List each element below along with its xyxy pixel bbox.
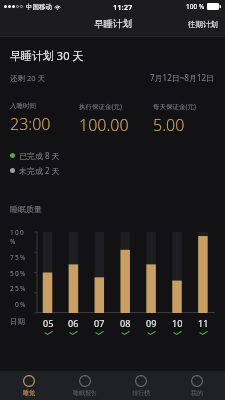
staticText: 50% xyxy=(10,269,27,278)
staticText: 睡觉 xyxy=(23,389,35,397)
staticText: 75% xyxy=(10,253,27,262)
staticText: 06 xyxy=(68,317,79,329)
staticText: 日期 xyxy=(10,317,25,326)
other: 排行榜 xyxy=(135,375,147,387)
staticText: 08 xyxy=(120,317,131,329)
other: 我的 xyxy=(191,375,203,387)
staticText: 早睡计划 30 天 xyxy=(10,48,84,63)
staticText: 0% xyxy=(15,300,27,309)
other: 睡觉 xyxy=(23,375,35,387)
staticText: 11:27 xyxy=(113,2,133,12)
staticText: 07 xyxy=(94,317,105,329)
staticText: 已完成 8 天 xyxy=(19,150,60,161)
staticText: 中国移动 xyxy=(26,3,52,11)
staticText: 早睡计划 xyxy=(94,18,132,30)
staticText: 100 % xyxy=(186,2,205,11)
button[interactable]: 往期计划 xyxy=(180,13,225,37)
staticText: 入睡时间 xyxy=(10,102,36,110)
staticText: 还剩 20 天 xyxy=(10,73,45,83)
staticText: 未完成 2 天 xyxy=(19,165,60,176)
staticText: 7月12日~8月12日 xyxy=(150,72,215,83)
staticText: 5.00 xyxy=(153,114,185,136)
staticText: 25% xyxy=(10,284,27,293)
staticText: 09 xyxy=(146,317,157,329)
staticText: 往期计划 xyxy=(188,20,218,29)
staticText: 睡眠质量 xyxy=(10,204,42,214)
staticText: 100% xyxy=(10,228,27,246)
staticText: 执行保证金(元) xyxy=(79,102,122,111)
staticText: 我的 xyxy=(191,389,203,397)
staticText: 睡眠报告 xyxy=(73,389,97,397)
staticText: 11 xyxy=(198,317,209,329)
button[interactable]: 排行榜 xyxy=(113,371,169,400)
staticText: 100.00 xyxy=(79,114,129,136)
button[interactable]: 睡觉 xyxy=(0,371,57,400)
staticText: 排行榜 xyxy=(132,389,150,397)
staticText: 23:00 xyxy=(10,113,51,135)
staticText: 每天保证金(元) xyxy=(153,102,196,111)
button[interactable]: 我的 xyxy=(169,371,225,400)
button[interactable]: 睡眠报告 xyxy=(57,371,113,400)
staticText: 10 xyxy=(172,317,183,329)
staticText: 05 xyxy=(43,317,54,329)
other: 睡眠报告 xyxy=(79,375,91,387)
